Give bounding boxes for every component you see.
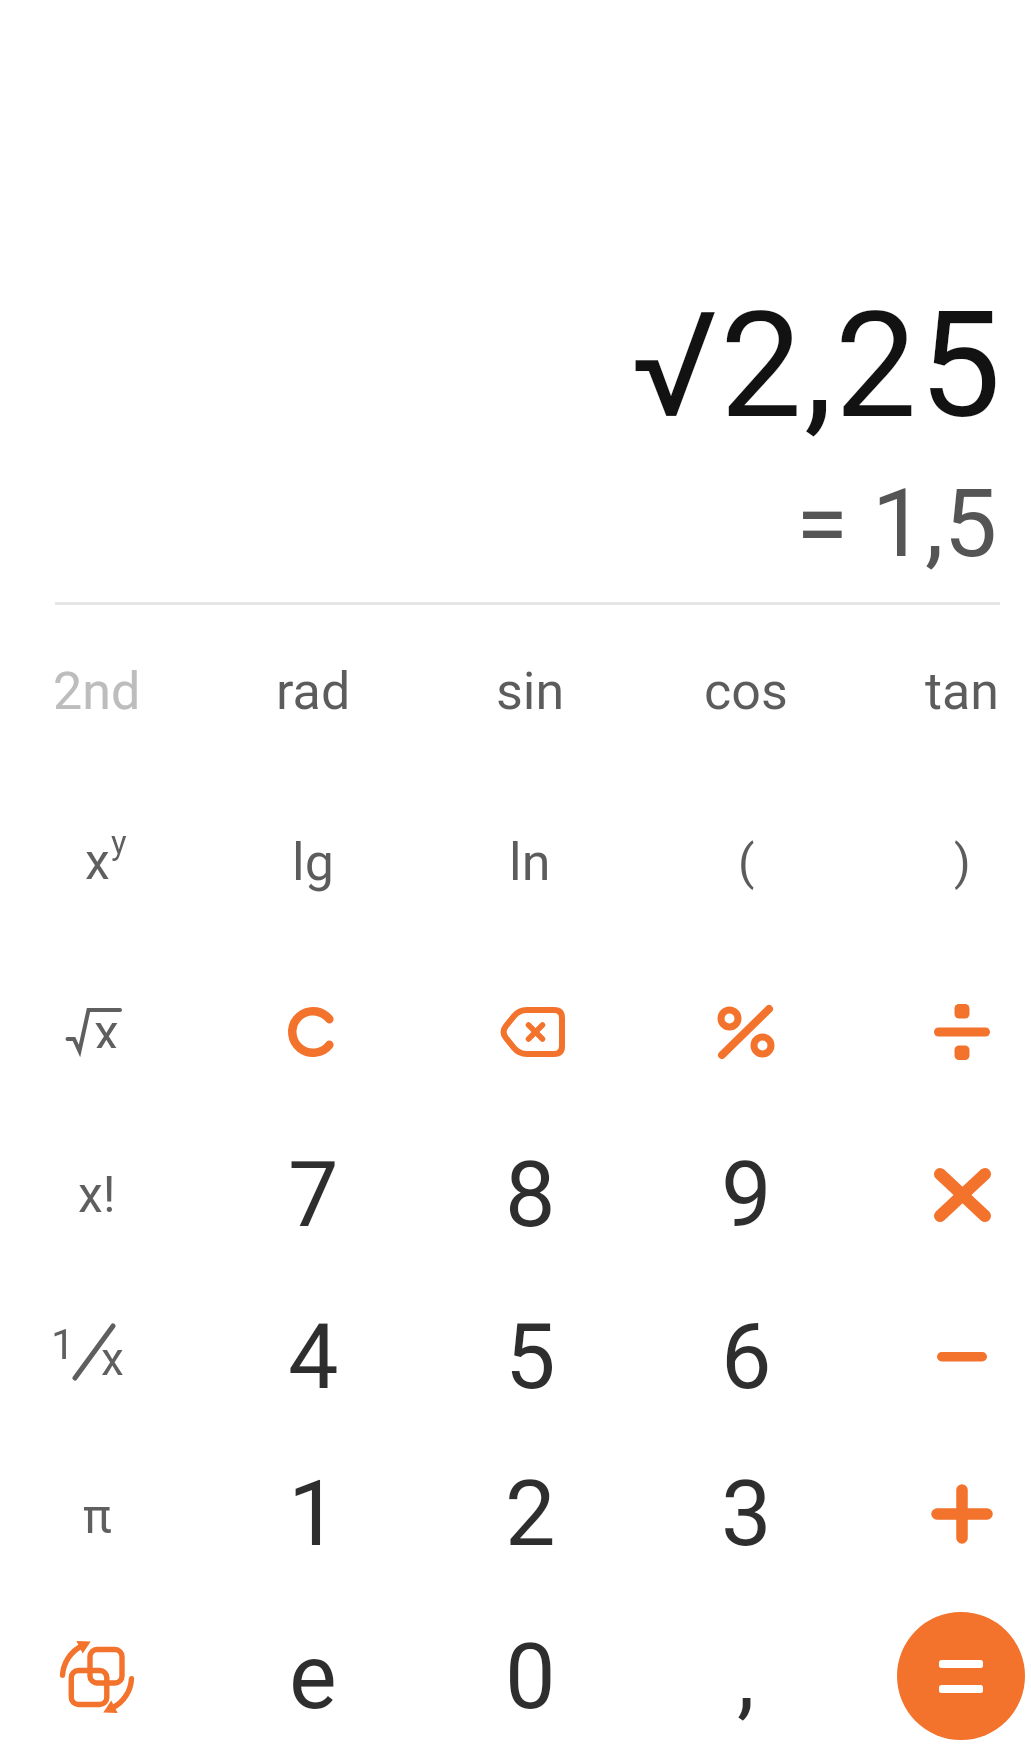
staticText: x [85, 833, 110, 892]
staticText: 4 [288, 1305, 339, 1410]
staticText: ( [738, 834, 755, 890]
button[interactable]: 9 [638, 1113, 854, 1277]
staticText: lg [292, 832, 334, 893]
button[interactable] [897, 1612, 1025, 1740]
staticText: 3 [721, 1462, 772, 1567]
button[interactable]: ( [638, 780, 854, 944]
button[interactable]: 4 [205, 1275, 421, 1439]
staticText: √2,25 [631, 281, 1003, 452]
button[interactable] [854, 1275, 1031, 1439]
button[interactable]: 1 [0, 1275, 205, 1439]
staticText: = 1,5 [796, 468, 998, 579]
button[interactable] [638, 950, 854, 1114]
button[interactable]: tan [854, 609, 1031, 773]
staticText: 0 [505, 1625, 556, 1730]
button[interactable]: x [0, 780, 205, 944]
staticText: 2 [505, 1462, 556, 1567]
staticText: π [83, 1488, 112, 1544]
staticText: 1 [288, 1462, 339, 1567]
button[interactable]: 2nd [0, 609, 205, 773]
staticText: 5 [505, 1305, 556, 1410]
staticText: rad [276, 661, 351, 722]
button[interactable] [422, 950, 638, 1114]
button[interactable]: ln [422, 780, 638, 944]
staticText: x! [78, 1166, 116, 1225]
staticText: tan [925, 661, 1000, 722]
staticText: , [737, 1625, 755, 1730]
button[interactable]: rad [205, 609, 421, 773]
staticText: sin [496, 661, 565, 722]
staticText: x [94, 1004, 119, 1048]
button[interactable] [0, 1595, 205, 1759]
button[interactable]: , [638, 1595, 854, 1759]
staticText: 2nd [53, 661, 141, 722]
staticText: 8 [505, 1143, 556, 1248]
staticText: 6 [721, 1305, 772, 1410]
staticText: 1 [51, 1320, 75, 1369]
button[interactable] [854, 1113, 1031, 1277]
button[interactable]: 8 [422, 1113, 638, 1277]
button[interactable]: sin [422, 609, 638, 773]
button[interactable]: 2 [422, 1432, 638, 1596]
staticText: y [111, 823, 127, 862]
button[interactable]: ) [854, 780, 1031, 944]
button[interactable]: 3 [638, 1432, 854, 1596]
button[interactable]: x! [0, 1113, 205, 1277]
staticText: e [289, 1625, 337, 1730]
staticText: ) [954, 834, 971, 890]
button[interactable]: 7 [205, 1113, 421, 1277]
staticText: cos [704, 661, 788, 722]
button[interactable]: 6 [638, 1275, 854, 1439]
button[interactable]: 5 [422, 1275, 638, 1439]
button[interactable]: e [205, 1595, 421, 1759]
button[interactable] [854, 1432, 1031, 1596]
button[interactable] [205, 950, 421, 1114]
staticText: ln [509, 832, 551, 893]
staticText: 7 [288, 1143, 339, 1248]
button[interactable]: 1 [205, 1432, 421, 1596]
button[interactable]: π [0, 1432, 205, 1596]
staticText: 9 [721, 1143, 772, 1248]
button[interactable]: lg [205, 780, 421, 944]
button[interactable] [854, 950, 1031, 1114]
button[interactable]: cos [638, 609, 854, 773]
button[interactable]: 0 [422, 1595, 638, 1759]
button[interactable]: x [0, 950, 205, 1114]
staticText: x [101, 1332, 124, 1386]
